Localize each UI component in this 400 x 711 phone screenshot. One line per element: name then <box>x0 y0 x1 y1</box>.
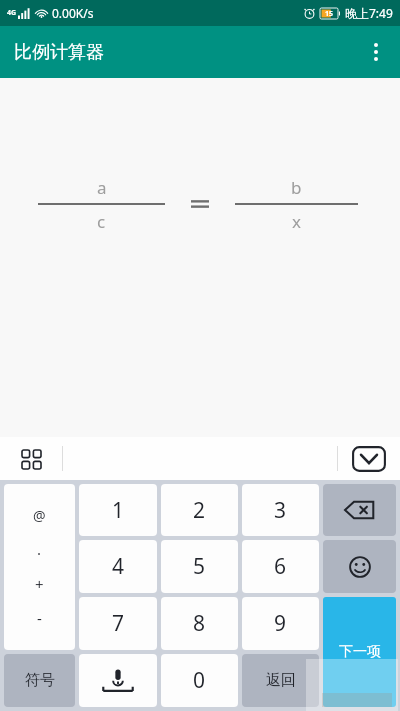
staticText: 15 <box>325 9 334 19</box>
staticText: 8 <box>193 609 206 638</box>
button[interactable]: 下一项 <box>323 597 396 707</box>
staticText: 符号 <box>25 671 55 690</box>
button[interactable]: c <box>38 206 165 236</box>
button[interactable]: @ <box>4 484 75 650</box>
button[interactable]: 3 <box>242 484 319 536</box>
staticText: 下一项 <box>339 643 381 661</box>
button[interactable]: 7 <box>79 597 157 650</box>
staticText: x <box>292 210 301 233</box>
button[interactable]: 4 <box>79 540 157 593</box>
staticText: 6 <box>274 552 287 581</box>
button[interactable]: 2 <box>161 484 238 536</box>
staticText: a <box>97 176 107 199</box>
button[interactable]: 6 <box>242 540 319 593</box>
button[interactable]: b <box>235 172 358 202</box>
button[interactable]: 9 <box>242 597 319 650</box>
button[interactable]: Emoji <box>323 540 396 593</box>
button[interactable]: Keyboard apps <box>14 442 48 476</box>
staticText: + <box>35 574 44 594</box>
button[interactable]: More options <box>352 28 400 76</box>
staticText: - <box>37 608 42 628</box>
staticText: c <box>97 210 106 233</box>
button[interactable]: Hide keyboard <box>351 445 387 473</box>
staticText: b <box>291 176 302 199</box>
staticText: 1 <box>112 496 125 525</box>
staticText: 0 <box>193 666 206 695</box>
staticText: . <box>37 539 42 559</box>
staticText: 比例计算器 <box>14 41 104 64</box>
staticText: 5 <box>193 552 206 581</box>
button[interactable]: 1 <box>79 484 157 536</box>
staticText: 3 <box>274 496 287 525</box>
staticText: 4 <box>112 552 125 581</box>
button[interactable]: 0 <box>161 654 238 707</box>
button[interactable]: 8 <box>161 597 238 650</box>
staticText: 0.00K/s <box>52 5 94 21</box>
button[interactable]: Backspace <box>323 484 396 536</box>
staticText: @ <box>33 506 46 525</box>
staticText: 4G <box>7 8 17 18</box>
button[interactable]: 5 <box>161 540 238 593</box>
button[interactable]: 返回 <box>242 654 319 707</box>
staticText: 7 <box>112 609 125 638</box>
staticText: 9 <box>274 609 287 638</box>
button[interactable]: 符号 <box>4 654 75 707</box>
button[interactable]: x <box>235 206 358 236</box>
staticText: 晚上7:49 <box>345 5 393 21</box>
staticText: 返回 <box>266 671 296 690</box>
button[interactable]: Voice input and space <box>79 654 157 707</box>
staticText: 2 <box>193 496 206 525</box>
button[interactable]: a <box>38 172 165 202</box>
